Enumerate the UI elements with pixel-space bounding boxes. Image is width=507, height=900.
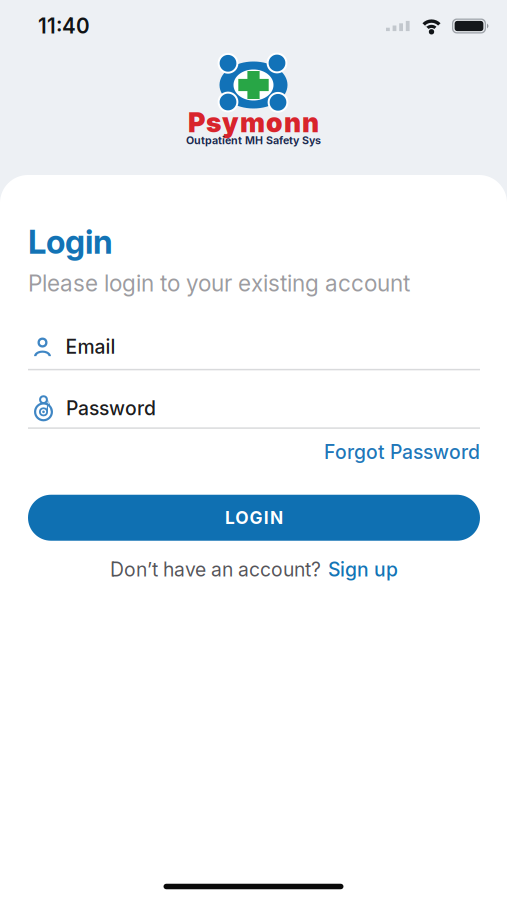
staticText: Login: [28, 222, 113, 261]
staticText: Forgot Password: [324, 440, 480, 464]
staticText: Password: [66, 396, 156, 420]
staticText: Psymonn: [188, 106, 319, 139]
staticText: 11:40: [38, 13, 90, 38]
staticText: Don’t have an account?: [110, 558, 321, 581]
staticText: Please login to your existing account: [28, 269, 410, 297]
staticText: Email: [65, 335, 115, 358]
button[interactable]: LOGIN: [28, 495, 480, 541]
button[interactable]: Email: [28, 335, 480, 358]
button[interactable]: Password: [28, 395, 480, 421]
button[interactable]: Forgot Password: [324, 440, 480, 464]
staticText: Sign up: [328, 558, 398, 581]
button[interactable]: Sign up: [328, 558, 398, 581]
staticText: Outpatient MH Safety Sys: [186, 134, 321, 147]
staticText: LOGIN: [225, 507, 283, 528]
